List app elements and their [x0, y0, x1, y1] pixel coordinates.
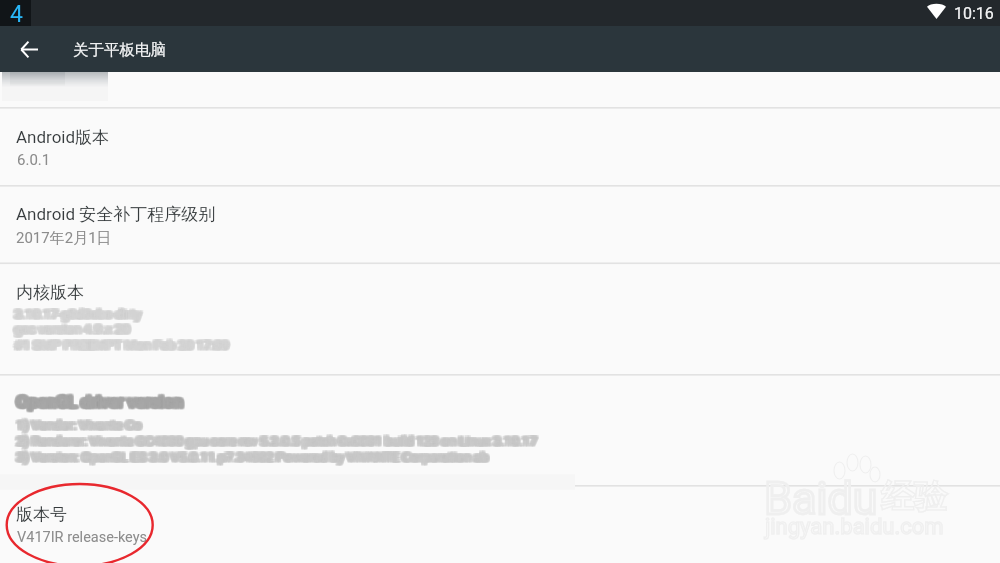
staticText: OpenGL driver version — [18, 391, 185, 411]
staticText: gcc version 4.9.x 20 — [17, 321, 133, 336]
staticText: 3) Version: OpenGL ES 3.0 V5.0.11.p7.345… — [19, 450, 491, 465]
staticText: 3) Version: OpenGL ES 3.0 V5.0.11.p7.345… — [15, 450, 487, 465]
staticText: OpenGL driver version — [19, 392, 186, 412]
staticText: #1 SMP PREEMPT Mon Feb 20 17:09 — [16, 337, 231, 352]
staticText: 3.10.17-g3d3cbc-dirty — [16, 306, 143, 321]
button[interactable]: Android 安全补丁程序级别 — [0, 186, 1000, 263]
staticText: gcc version 4.9.x 20 — [14, 320, 130, 335]
staticText: #1 SMP PREEMPT Mon Feb 20 17:09 — [13, 336, 228, 351]
staticText: 3) Version: OpenGL ES 3.0 V5.0.11.p7.345… — [15, 449, 487, 464]
staticText: 3.10.17-g3d3cbc-dirty — [12, 307, 139, 322]
button[interactable]: Back — [11, 31, 47, 67]
staticText: #1 SMP PREEMPT Mon Feb 20 17:09 — [15, 337, 230, 352]
staticText: 3) Version: OpenGL ES 3.0 V5.0.11.p7.345… — [18, 449, 490, 464]
staticText: 3.10.17-g3d3cbc-dirty — [14, 307, 141, 322]
staticText: 经验 — [881, 476, 947, 518]
staticText: 3) Version: OpenGL ES 3.0 V5.0.11.p7.345… — [16, 450, 488, 465]
staticText: 2) Renderer: Vivante GC4000 gpu core rev… — [15, 432, 536, 447]
staticText: OpenGL driver version — [15, 393, 182, 413]
staticText: 3) Version: OpenGL ES 3.0 V5.0.11.p7.345… — [14, 450, 486, 465]
staticText: gcc version 4.9.x 20 — [15, 323, 131, 338]
button[interactable]: OpenGL driver version — [0, 375, 1000, 486]
staticText: 3.10.17-g3d3cbc-dirty — [13, 308, 140, 323]
staticText: #1 SMP PREEMPT Mon Feb 20 17:09 — [17, 339, 232, 354]
staticText: 1) Vendor: Vivante Co — [14, 418, 139, 433]
staticText: 3) Version: OpenGL ES 3.0 V5.0.11.p7.345… — [18, 448, 490, 463]
staticText: OpenGL driver version — [15, 392, 182, 412]
staticText: 3.10.17-g3d3cbc-dirty — [16, 305, 143, 320]
staticText: OpenGL driver version — [17, 393, 184, 413]
staticText: gcc version 4.9.x 20 — [14, 322, 130, 337]
staticText: 3) Version: OpenGL ES 3.0 V5.0.11.p7.345… — [17, 449, 489, 464]
staticText: gcc version 4.9.x 20 — [17, 320, 133, 335]
staticText: #1 SMP PREEMPT Mon Feb 20 17:09 — [14, 338, 229, 353]
staticText: 1) Vendor: Vivante Co — [14, 416, 139, 431]
staticText: 3.10.17-g3d3cbc-dirty — [14, 307, 141, 322]
staticText: OpenGL driver version — [17, 392, 184, 412]
staticText: gcc version 4.9.x 20 — [14, 321, 130, 336]
staticText: 1) Vendor: Vivante Co — [15, 419, 140, 434]
staticText: OpenGL driver version — [17, 392, 184, 412]
staticText: 2) Renderer: Vivante GC4000 gpu core rev… — [14, 434, 535, 449]
staticText: OpenGL driver version — [15, 392, 182, 412]
staticText: gcc version 4.9.x 20 — [13, 323, 129, 338]
staticText: gcc version 4.9.x 20 — [16, 322, 132, 337]
staticText: 1) Vendor: Vivante Co — [17, 417, 142, 432]
staticText: 3.10.17-g3d3cbc-dirty — [15, 306, 142, 321]
staticText: OpenGL driver version — [18, 392, 185, 412]
staticText: 1) Vendor: Vivante Co — [17, 418, 142, 433]
staticText: 2) Renderer: Vivante GC4000 gpu core rev… — [17, 433, 538, 448]
staticText: 3) Version: OpenGL ES 3.0 V5.0.11.p7.345… — [19, 451, 491, 466]
staticText: 3.10.17-g3d3cbc-dirty — [15, 305, 142, 320]
staticText: 1) Vendor: Vivante Co — [18, 417, 143, 432]
staticText: 3) Version: OpenGL ES 3.0 V5.0.11.p7.345… — [15, 450, 487, 465]
staticText: 3) Version: OpenGL ES 3.0 V5.0.11.p7.345… — [17, 449, 489, 464]
staticText: 3.10.17-g3d3cbc-dirty — [16, 308, 143, 323]
staticText: #1 SMP PREEMPT Mon Feb 20 17:09 — [15, 336, 230, 351]
staticText: gcc version 4.9.x 20 — [13, 320, 129, 335]
staticText: gcc version 4.9.x 20 — [15, 321, 131, 336]
staticText: 3) Version: OpenGL ES 3.0 V5.0.11.p7.345… — [14, 450, 486, 465]
staticText: gcc version 4.9.x 20 — [16, 320, 132, 335]
staticText: OpenGL driver version — [19, 390, 186, 410]
staticText: 2) Renderer: Vivante GC4000 gpu core rev… — [17, 434, 538, 449]
staticText: OpenGL driver version — [17, 391, 184, 411]
staticText: gcc version 4.9.x 20 — [15, 320, 131, 335]
staticText: #1 SMP PREEMPT Mon Feb 20 17:09 — [14, 338, 229, 353]
staticText: 3) Version: OpenGL ES 3.0 V5.0.11.p7.345… — [14, 448, 486, 463]
staticText: gcc version 4.9.x 20 — [16, 322, 132, 337]
staticText: 3) Version: OpenGL ES 3.0 V5.0.11.p7.345… — [16, 449, 488, 464]
staticText: gcc version 4.9.x 20 — [17, 322, 133, 337]
button[interactable]: 内核版本 — [0, 264, 1000, 375]
staticText: #1 SMP PREEMPT Mon Feb 20 17:09 — [17, 338, 232, 353]
staticText: 2) Renderer: Vivante GC4000 gpu core rev… — [14, 435, 535, 450]
staticText: 2) Renderer: Vivante GC4000 gpu core rev… — [19, 434, 540, 449]
staticText: gcc version 4.9.x 20 — [12, 320, 128, 335]
staticText: gcc version 4.9.x 20 — [12, 323, 128, 338]
staticText: 1) Vendor: Vivante Co — [19, 419, 144, 434]
staticText: #1 SMP PREEMPT Mon Feb 20 17:09 — [12, 336, 227, 351]
staticText: gcc version 4.9.x 20 — [13, 322, 129, 337]
staticText: #1 SMP PREEMPT Mon Feb 20 17:09 — [17, 338, 232, 353]
staticText: #1 SMP PREEMPT Mon Feb 20 17:09 — [14, 336, 229, 351]
staticText: 1) Vendor: Vivante Co — [17, 419, 142, 434]
staticText: 2) Renderer: Vivante GC4000 gpu core rev… — [14, 432, 535, 447]
staticText: 1) Vendor: Vivante Co — [15, 416, 140, 431]
staticText: 3.10.17-g3d3cbc-dirty — [17, 308, 144, 323]
button[interactable] — [0, 72, 1000, 107]
staticText: OpenGL driver version — [18, 390, 185, 410]
staticText: 2) Renderer: Vivante GC4000 gpu core rev… — [18, 435, 539, 450]
staticText: 3.10.17-g3d3cbc-dirty — [12, 305, 139, 320]
button[interactable]: Android版本 — [0, 109, 1000, 186]
button[interactable]: 版本号 — [0, 486, 1000, 563]
staticText: #1 SMP PREEMPT Mon Feb 20 17:09 — [13, 337, 228, 352]
staticText: 1) Vendor: Vivante Co — [15, 418, 140, 433]
staticText: 3) Version: OpenGL ES 3.0 V5.0.11.p7.345… — [16, 451, 488, 466]
staticText: 3.10.17-g3d3cbc-dirty — [15, 307, 142, 322]
staticText: #1 SMP PREEMPT Mon Feb 20 17:09 — [15, 337, 230, 352]
staticText: 3.10.17-g3d3cbc-dirty — [14, 306, 141, 321]
staticText: 3.10.17-g3d3cbc-dirty — [15, 307, 142, 322]
staticText: 3) Version: OpenGL ES 3.0 V5.0.11.p7.345… — [17, 450, 489, 465]
staticText: 1) Vendor: Vivante Co — [17, 416, 142, 431]
staticText: OpenGL driver version — [16, 390, 183, 410]
